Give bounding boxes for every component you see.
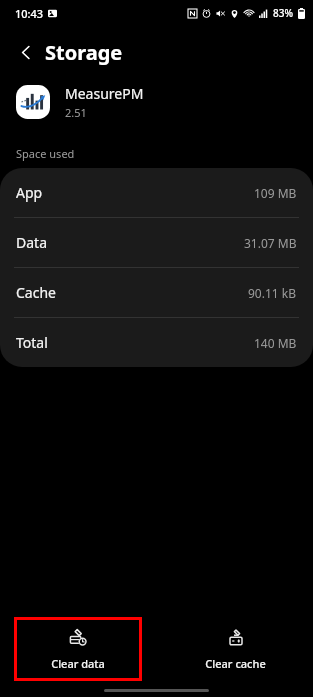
- staticText: 109 MB: [254, 185, 297, 201]
- staticText: 83%: [273, 6, 293, 20]
- button[interactable]: Clear data: [17, 620, 139, 678]
- staticText: Storage: [45, 39, 123, 66]
- staticText: Space used: [16, 146, 75, 161]
- staticText: Total: [16, 333, 48, 352]
- button[interactable]: Total: [0, 318, 313, 367]
- staticText: 2.51: [65, 105, 87, 120]
- button[interactable]: MeasurePM: [16, 84, 313, 120]
- button[interactable]: Back: [8, 34, 44, 70]
- staticText: 140 MB: [254, 335, 297, 351]
- staticText: Cache: [16, 283, 56, 302]
- button[interactable]: Data: [0, 218, 313, 267]
- staticText: 90.11 kB: [248, 285, 297, 301]
- staticText: Data: [16, 233, 47, 252]
- staticText: App: [16, 183, 43, 202]
- staticText: Clear data: [51, 656, 105, 671]
- button[interactable]: Cache: [0, 268, 313, 317]
- button[interactable]: Clear cache: [171, 617, 299, 681]
- staticText: 10:43: [15, 6, 44, 21]
- staticText: Clear cache: [205, 656, 266, 671]
- button[interactable]: App: [0, 168, 313, 217]
- staticText: 31.07 MB: [244, 235, 297, 251]
- staticText: MeasurePM: [65, 84, 144, 103]
